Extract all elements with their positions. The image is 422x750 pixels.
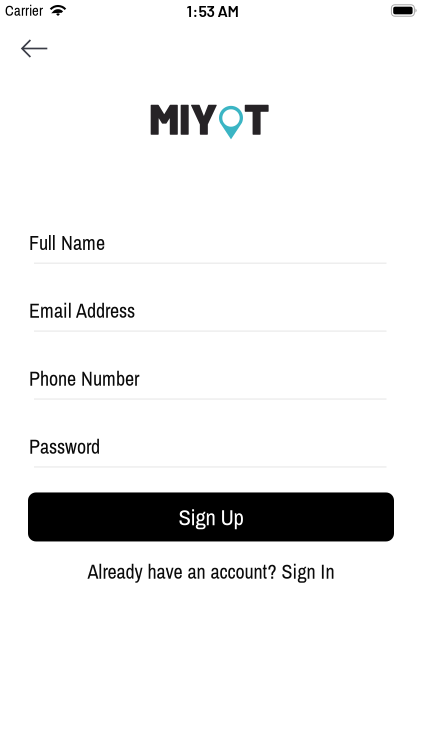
- staticText: Already have an account? Sign In: [87, 558, 334, 585]
- staticText: Email Address: [29, 297, 135, 324]
- staticText: Sign Up: [178, 502, 243, 532]
- button[interactable]: Full Name: [0, 229, 422, 264]
- staticText: Phone Number: [29, 365, 139, 392]
- staticText: Password: [29, 433, 100, 460]
- staticText: T: [244, 92, 269, 143]
- button[interactable]: Email Address: [0, 297, 422, 331]
- button[interactable]: Sign Up: [28, 492, 394, 541]
- staticText: MIY: [149, 92, 218, 143]
- button[interactable]: Already have an account? Sign In: [87, 558, 334, 585]
- staticText: 1:53 AM: [186, 1, 238, 20]
- button[interactable]: Password: [0, 433, 422, 467]
- staticText: Full Name: [29, 229, 105, 256]
- button[interactable]: Back: [0, 35, 47, 62]
- staticText: Carrier: [5, 1, 43, 20]
- button[interactable]: Phone Number: [0, 365, 422, 399]
